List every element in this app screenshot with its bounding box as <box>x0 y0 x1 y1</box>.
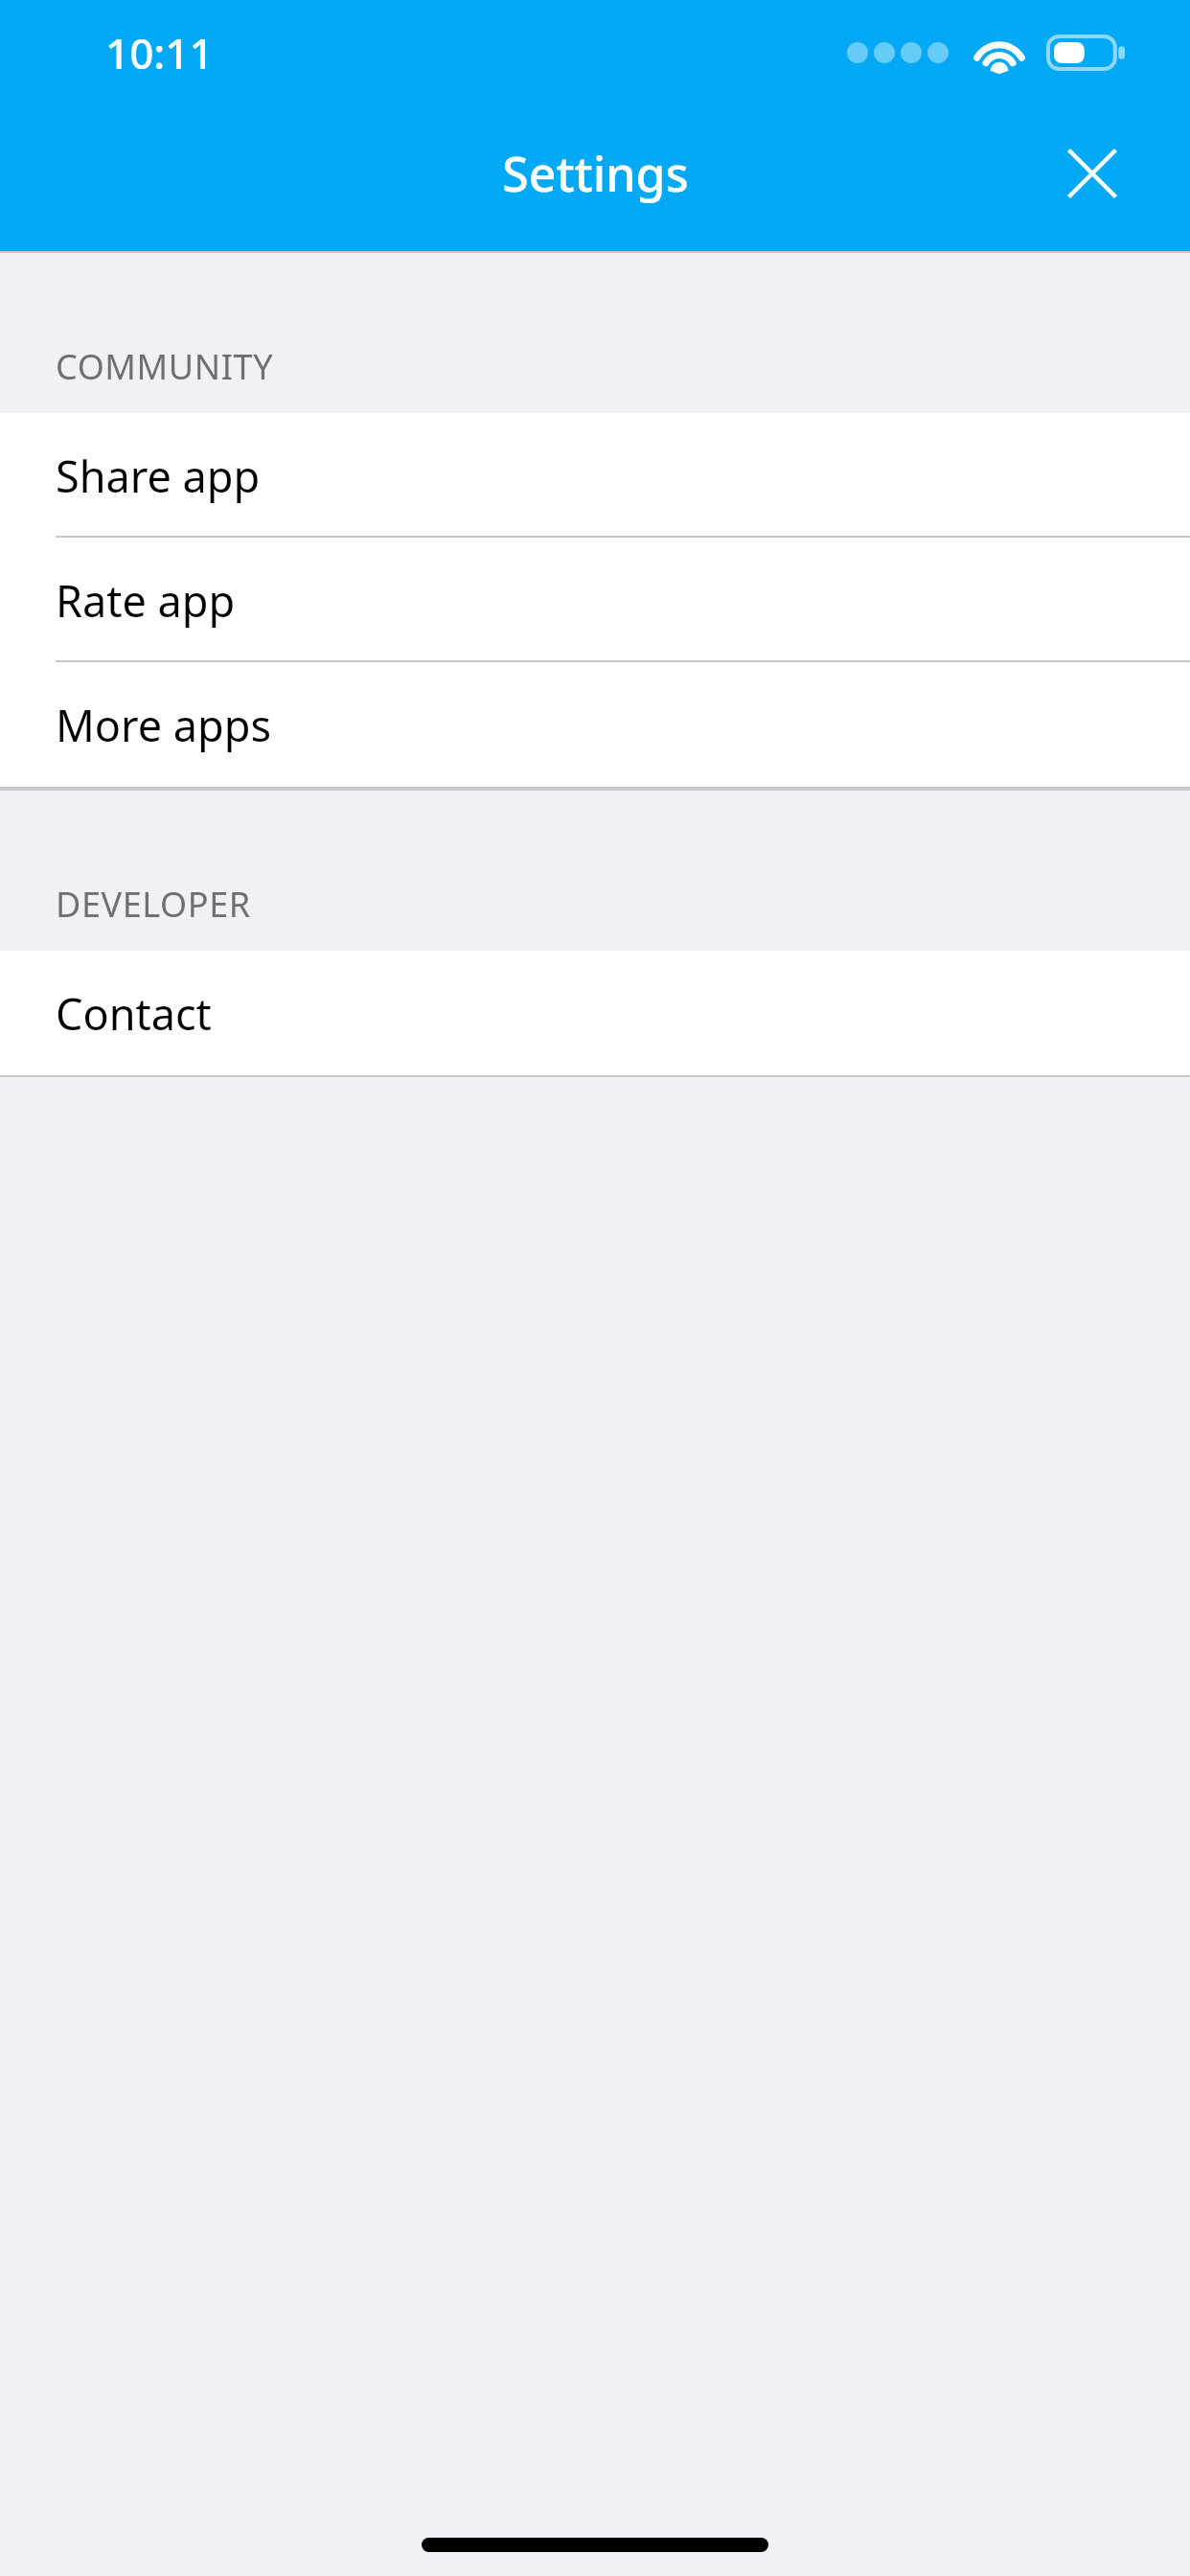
button[interactable]: More apps <box>0 662 1190 787</box>
staticText: Rate app <box>56 571 236 630</box>
staticText: More apps <box>56 696 271 754</box>
staticText: 10:11 <box>105 24 214 81</box>
button[interactable]: Contact <box>0 951 1190 1075</box>
button[interactable]: Share app <box>0 413 1190 538</box>
button[interactable]: Rate app <box>0 538 1190 662</box>
button[interactable]: Close <box>1041 122 1144 225</box>
staticText: Share app <box>56 447 261 505</box>
staticText: Contact <box>56 984 212 1043</box>
staticText: COMMUNITY <box>56 343 274 390</box>
staticText: Settings <box>502 141 689 206</box>
staticText: DEVELOPER <box>56 881 251 928</box>
